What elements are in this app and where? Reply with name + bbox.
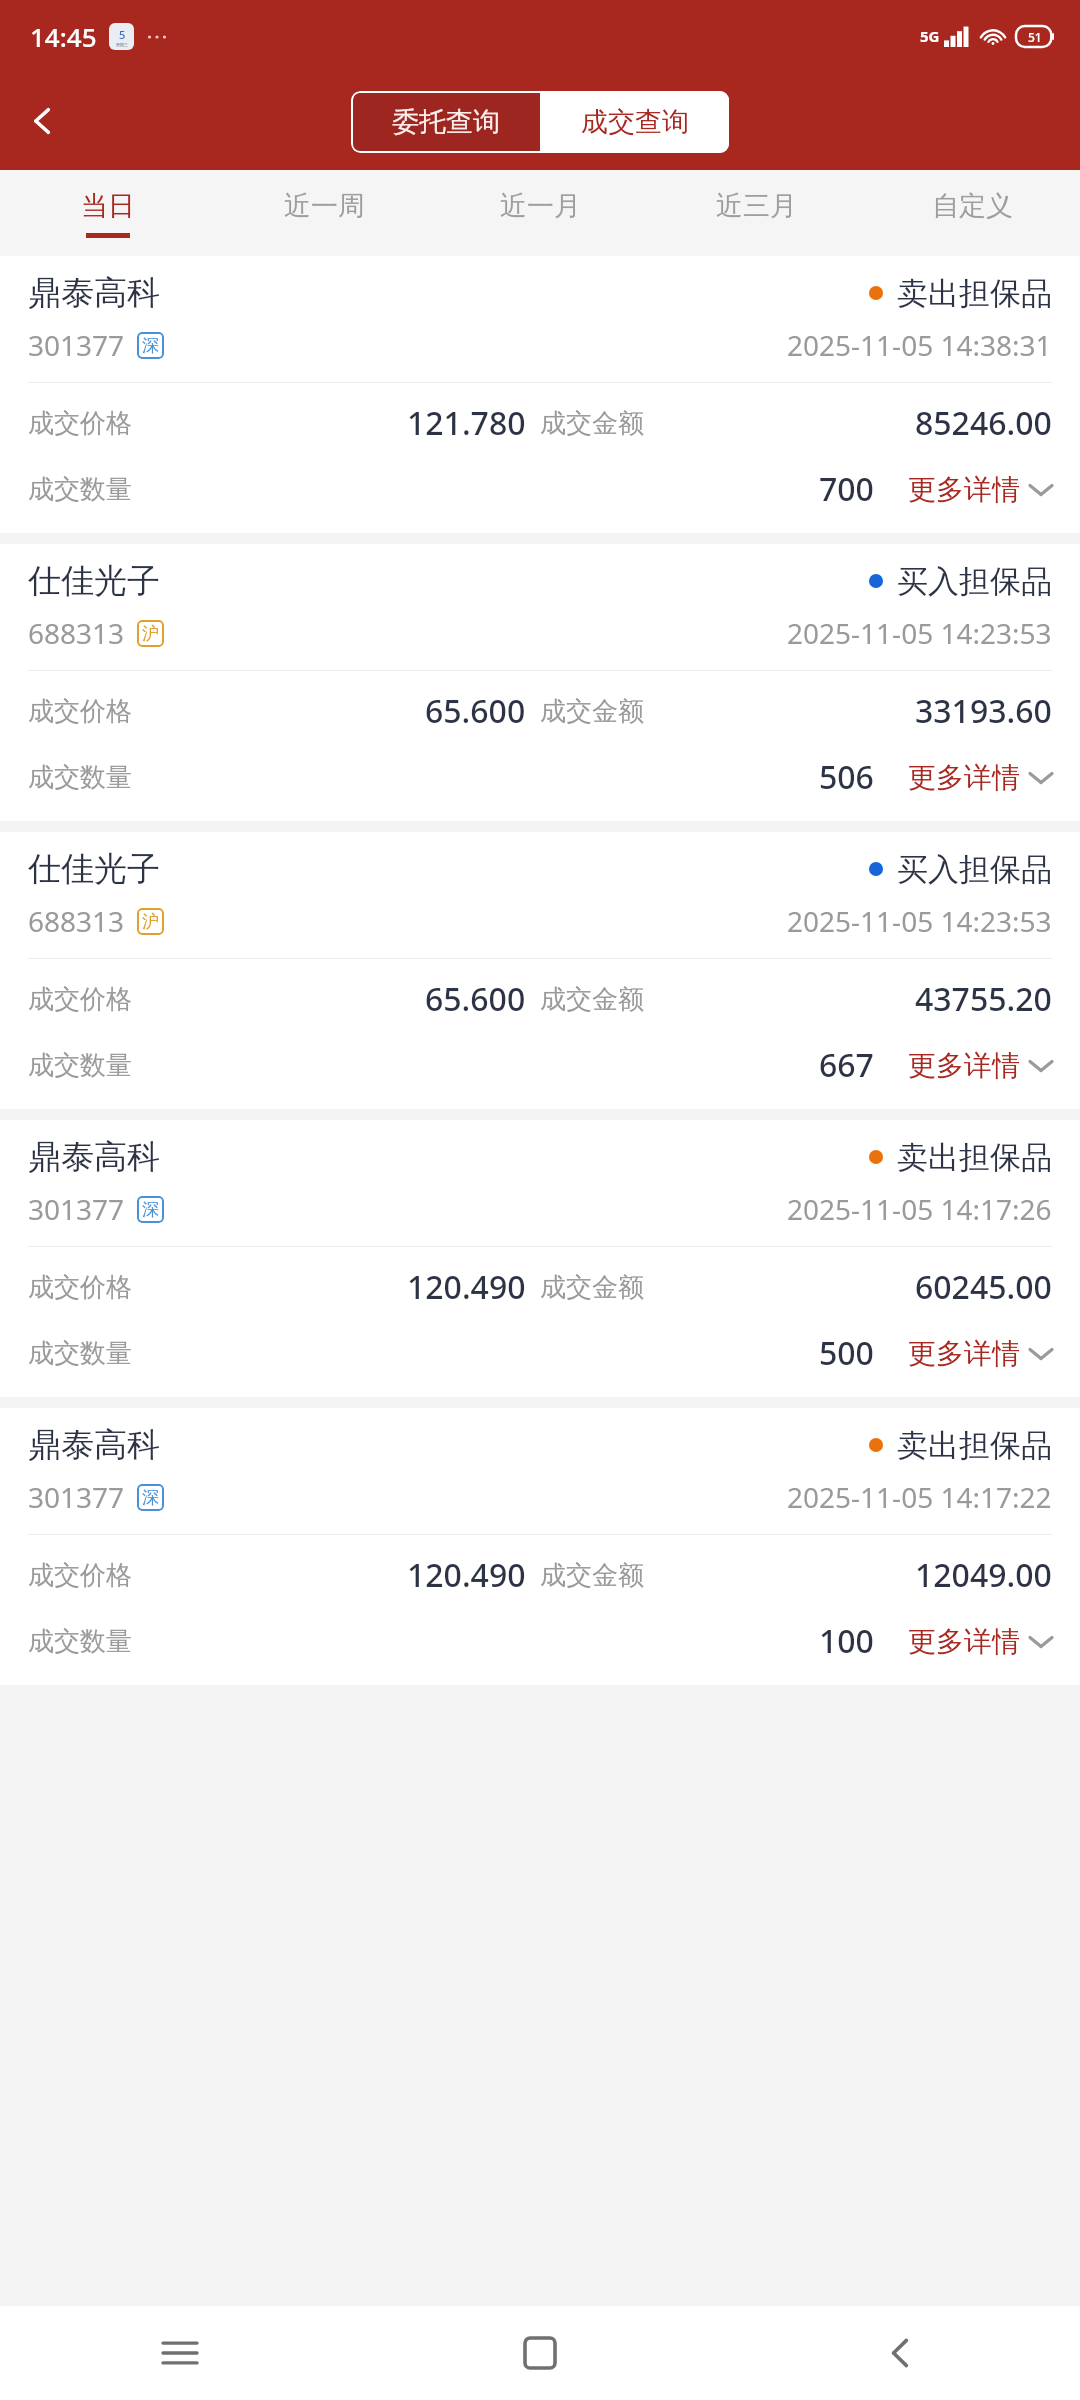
staticText: 买入担保品 (897, 850, 1052, 889)
staticText: 33193.60 (915, 689, 1052, 733)
button[interactable]: 近一月 (432, 170, 648, 256)
staticText: 成交数量 (28, 1049, 132, 1082)
staticText: 成交价格 (28, 407, 132, 440)
staticText: 成交价格 (28, 695, 132, 728)
staticText: 301377 (28, 326, 125, 364)
staticText: 深 (142, 1487, 159, 1508)
button[interactable]: Back (0, 78, 86, 164)
staticText: 委托查询 (392, 105, 500, 139)
staticText: 2025-11-05 14:38:31 (787, 326, 1052, 364)
staticText: 鼎泰高科 (28, 1424, 160, 1466)
staticText: 120.490 (407, 1265, 526, 1309)
button[interactable]: 更多详情 (908, 1048, 1052, 1083)
button[interactable]: 仕佳光子 (0, 832, 1080, 1109)
button[interactable]: 自定义 (864, 170, 1080, 256)
button[interactable]: 鼎泰高科 (0, 1408, 1080, 1685)
staticText: 700 (819, 467, 874, 511)
staticText: 沪 (142, 911, 159, 932)
staticText: 成交价格 (28, 1271, 132, 1304)
staticText: 500 (819, 1331, 874, 1375)
staticText: 仕佳光子 (28, 848, 160, 890)
staticText: 成交金额 (540, 1271, 644, 1304)
button[interactable]: 鼎泰高科 (0, 1120, 1080, 1397)
button[interactable]: Home (360, 2306, 720, 2400)
staticText: 43755.20 (915, 977, 1052, 1021)
staticText: 卖出担保品 (897, 1426, 1052, 1465)
staticText: 85246.00 (915, 401, 1052, 445)
staticText: 成交数量 (28, 1625, 132, 1658)
staticText: 沪 (142, 623, 159, 644)
button[interactable]: Recents (0, 2306, 360, 2400)
staticText: 更多详情 (908, 1624, 1020, 1659)
staticText: 近一周 (284, 189, 365, 223)
staticText: 当日 (81, 189, 135, 223)
staticText: 成交金额 (540, 1559, 644, 1592)
button[interactable]: 更多详情 (908, 1336, 1052, 1371)
staticText: 更多详情 (908, 1336, 1020, 1371)
staticText: 60245.00 (915, 1265, 1052, 1309)
staticText: 100 (819, 1619, 874, 1663)
staticText: 2025-11-05 14:23:53 (787, 902, 1052, 940)
staticText: 成交查询 (581, 105, 689, 139)
staticText: 更多详情 (908, 472, 1020, 507)
staticText: 65.600 (425, 689, 526, 733)
staticText: 成交金额 (540, 407, 644, 440)
button[interactable]: 近三月 (648, 170, 864, 256)
staticText: 仕佳光子 (28, 560, 160, 602)
staticText: 5G (920, 26, 940, 46)
staticText: 12049.00 (915, 1553, 1052, 1597)
staticText: 121.780 (407, 401, 526, 445)
staticText: 深 (142, 335, 159, 356)
staticText: 301377 (28, 1190, 125, 1228)
staticText: 120.490 (407, 1553, 526, 1597)
staticText: 51 (1028, 29, 1042, 45)
staticText: 卖出担保品 (897, 1138, 1052, 1177)
staticText: 成交数量 (28, 1337, 132, 1370)
button[interactable]: 仕佳光子 (0, 544, 1080, 821)
staticText: 星期三 (116, 42, 128, 47)
staticText: 688313 (28, 614, 125, 652)
button[interactable]: Back (720, 2306, 1080, 2400)
staticText: 成交价格 (28, 1559, 132, 1592)
staticText: 鼎泰高科 (28, 1136, 160, 1178)
staticText: 近三月 (716, 189, 797, 223)
staticText: 301377 (28, 1478, 125, 1516)
button[interactable]: 鼎泰高科 (0, 256, 1080, 533)
staticText: 成交金额 (540, 983, 644, 1016)
staticText: 成交价格 (28, 983, 132, 1016)
button[interactable]: 更多详情 (908, 760, 1052, 795)
staticText: 近一月 (500, 189, 581, 223)
button[interactable]: 更多详情 (908, 472, 1052, 507)
staticText: 14:45 (30, 19, 97, 54)
staticText: 更多详情 (908, 760, 1020, 795)
staticText: 买入担保品 (897, 562, 1052, 601)
staticText: 2025-11-05 14:23:53 (787, 614, 1052, 652)
staticText: 688313 (28, 902, 125, 940)
staticText: 2025-11-05 14:17:26 (787, 1190, 1052, 1228)
staticText: 667 (819, 1043, 874, 1087)
button[interactable]: 成交查询 (540, 91, 729, 153)
staticText: 成交数量 (28, 761, 132, 794)
staticText: 成交数量 (28, 473, 132, 506)
staticText: 5 (119, 27, 126, 42)
staticText: 更多详情 (908, 1048, 1020, 1083)
button[interactable]: 更多详情 (908, 1624, 1052, 1659)
staticText: 自定义 (932, 189, 1013, 223)
button[interactable]: 委托查询 (351, 91, 540, 153)
staticText: 鼎泰高科 (28, 272, 160, 314)
staticText: 2025-11-05 14:17:22 (787, 1478, 1052, 1516)
staticText: 卖出担保品 (897, 274, 1052, 313)
button[interactable]: 近一周 (216, 170, 432, 256)
staticText: 深 (142, 1199, 159, 1220)
button[interactable]: 当日 (0, 170, 216, 256)
staticText: 65.600 (425, 977, 526, 1021)
staticText: 成交金额 (540, 695, 644, 728)
staticText: 506 (819, 755, 874, 799)
